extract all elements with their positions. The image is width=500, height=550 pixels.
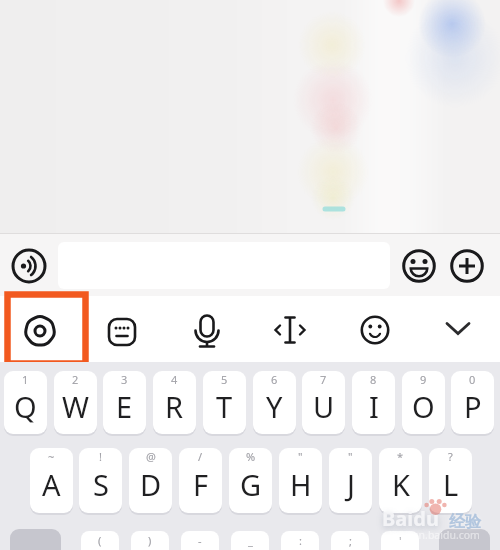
staticText: F: [193, 465, 209, 504]
staticText: ?: [448, 449, 453, 464]
button[interactable]: /: [179, 448, 222, 513]
staticText: G: [240, 465, 262, 504]
staticText: %: [246, 449, 256, 464]
button[interactable]: [12, 249, 46, 283]
button[interactable]: [107, 317, 139, 349]
staticText: J: [347, 465, 355, 504]
staticText: U: [313, 387, 335, 426]
staticText: S: [93, 465, 109, 504]
button[interactable]: 8: [352, 371, 395, 434]
button[interactable]: 0: [451, 371, 494, 434]
button[interactable]: %: [229, 448, 272, 513]
staticText: -: [198, 533, 202, 548]
staticText: *: [397, 449, 404, 464]
button[interactable]: [272, 316, 308, 352]
staticText: 4: [171, 372, 178, 387]
staticText: 8: [370, 372, 377, 387]
button[interactable]: [439, 529, 490, 550]
staticText: Y: [266, 387, 283, 426]
button[interactable]: 2: [54, 371, 97, 434]
button[interactable]: [190, 314, 224, 348]
staticText: _: [248, 533, 253, 548]
staticText: 经验: [449, 512, 481, 532]
button[interactable]: -: [181, 531, 219, 550]
staticText: H: [290, 465, 312, 504]
staticText: :: [299, 533, 302, 548]
button[interactable]: [402, 249, 436, 283]
staticText: T: [216, 387, 233, 426]
staticText: !: [99, 449, 102, 464]
staticText: 0: [469, 372, 476, 387]
button[interactable]: ": [329, 448, 372, 513]
button[interactable]: ): [131, 531, 169, 550]
staticText: 6: [271, 372, 278, 387]
button[interactable]: [10, 529, 61, 550]
staticText: ': [399, 533, 402, 548]
button[interactable]: [360, 315, 390, 345]
button[interactable]: ?: [429, 448, 472, 513]
staticText: W: [62, 387, 89, 426]
button[interactable]: [22, 316, 58, 352]
staticText: ": [348, 449, 353, 464]
staticText: Q: [14, 387, 37, 426]
button[interactable]: [450, 249, 484, 283]
button[interactable]: 9: [402, 371, 445, 434]
button[interactable]: ;: [331, 531, 369, 550]
button[interactable]: ': [381, 531, 419, 550]
button[interactable]: 5: [203, 371, 246, 434]
button[interactable]: 4: [153, 371, 196, 434]
button[interactable]: @: [129, 448, 172, 513]
staticText: 5: [221, 372, 228, 387]
button[interactable]: _: [231, 531, 269, 550]
staticText: 3: [121, 372, 128, 387]
button[interactable]: 3: [103, 371, 146, 434]
staticText: (: [98, 533, 102, 548]
staticText: ": [298, 449, 303, 464]
staticText: 9: [420, 372, 427, 387]
staticText: I: [369, 387, 379, 426]
staticText: K: [392, 465, 410, 504]
button[interactable]: [444, 320, 472, 348]
button[interactable]: :: [281, 531, 319, 550]
button[interactable]: ~: [30, 448, 73, 513]
staticText: @: [146, 449, 156, 464]
staticText: ;: [349, 533, 352, 548]
button[interactable]: 6: [253, 371, 296, 434]
staticText: 1: [22, 372, 29, 387]
button[interactable]: 1: [4, 371, 47, 434]
staticText: 7: [320, 372, 327, 387]
staticText: Baidu: [382, 505, 439, 532]
staticText: D: [140, 465, 162, 504]
button[interactable]: [0, 0, 500, 234]
button[interactable]: ": [279, 448, 322, 513]
staticText: 2: [72, 372, 79, 387]
staticText: R: [165, 387, 184, 426]
staticText: A: [42, 465, 61, 504]
staticText: L: [443, 465, 459, 504]
staticText: jingyan.baidu.com: [389, 528, 480, 542]
staticText: /: [198, 449, 203, 464]
button[interactable]: *: [379, 448, 422, 513]
staticText: ~: [48, 449, 55, 464]
button[interactable]: (: [81, 531, 119, 550]
button[interactable]: 7: [302, 371, 345, 434]
staticText: O: [412, 387, 435, 426]
staticText: P: [464, 387, 482, 426]
staticText: ): [148, 533, 152, 548]
staticText: E: [116, 387, 133, 426]
button[interactable]: !: [79, 448, 122, 513]
